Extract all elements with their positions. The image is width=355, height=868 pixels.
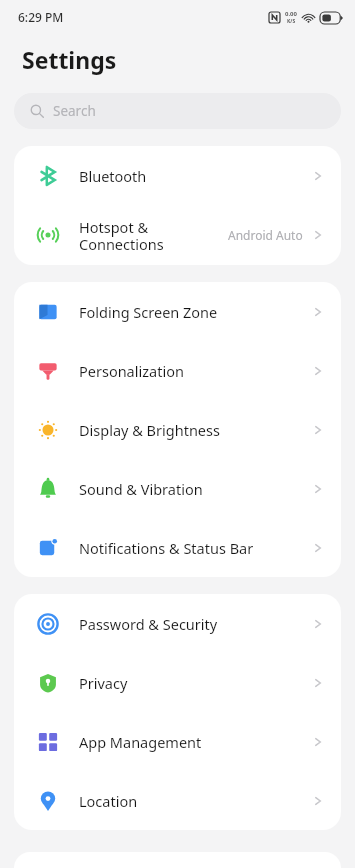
staticText: Privacy	[79, 673, 311, 693]
other: Open	[311, 735, 325, 749]
button[interactable]: Display & Brightness	[14, 400, 341, 459]
staticText: Location	[79, 791, 311, 811]
other: Open	[311, 423, 325, 437]
staticText: K/S	[287, 18, 296, 25]
button[interactable]: Search	[14, 93, 341, 129]
button[interactable]: Notifications & Status Bar	[14, 518, 341, 577]
other: Open	[311, 617, 325, 631]
staticText: 0.00	[285, 10, 297, 18]
button[interactable]: Bluetooth	[14, 146, 341, 205]
button[interactable]: App Management	[14, 712, 341, 771]
staticText: Bluetooth	[79, 166, 311, 186]
button[interactable]: Personalization	[14, 341, 341, 400]
staticText: Password & Security	[79, 614, 311, 634]
other: Open	[311, 364, 325, 378]
staticText: Sound & Vibration	[79, 479, 311, 499]
other: Open	[311, 794, 325, 808]
other: Open	[311, 228, 325, 242]
staticText: App Management	[79, 732, 311, 752]
staticText: Android Auto	[228, 227, 303, 243]
other: Open	[311, 482, 325, 496]
button[interactable]: Hotspot & Connections	[14, 205, 341, 265]
staticText: Hotspot & Connections	[79, 217, 228, 254]
button[interactable]: Password & Security	[14, 594, 341, 653]
staticText: Folding Screen Zone	[79, 302, 311, 322]
other: Open	[311, 676, 325, 690]
button[interactable]: Location	[14, 771, 341, 830]
staticText: Settings	[22, 44, 117, 75]
staticText: Notifications & Status Bar	[79, 538, 311, 558]
staticText: Search	[53, 102, 96, 120]
other: Open	[311, 541, 325, 555]
staticText: 6:29 PM	[18, 9, 64, 25]
other: Open	[311, 305, 325, 319]
staticText: Display & Brightness	[79, 420, 311, 440]
button[interactable]: Sound & Vibration	[14, 459, 341, 518]
button[interactable]: Folding Screen Zone	[14, 282, 341, 341]
button[interactable]: Privacy	[14, 653, 341, 712]
other: Open	[311, 169, 325, 183]
staticText: Personalization	[79, 361, 311, 381]
